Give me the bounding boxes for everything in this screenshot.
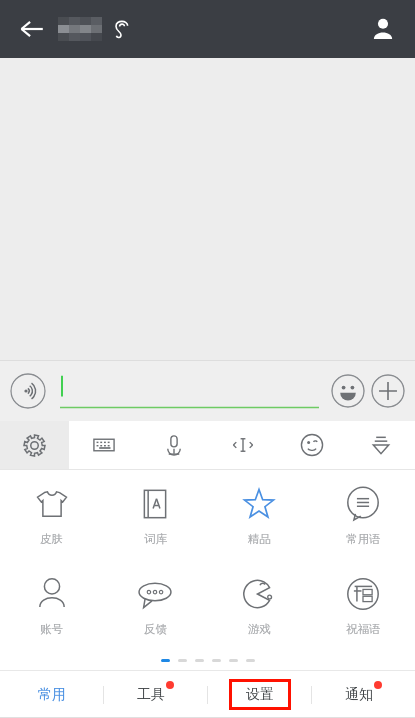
button[interactable]: Settings (0, 421, 69, 469)
button[interactable]: Emoji (331, 374, 365, 408)
button[interactable]: 词库 (103, 470, 207, 560)
button[interactable] (60, 360, 319, 421)
staticText: 祝福语 (346, 622, 381, 636)
staticText: 工具 (137, 686, 165, 704)
button[interactable]: 常用语 (311, 470, 415, 560)
button[interactable]: Cursor (208, 421, 277, 469)
staticText: 反馈 (144, 622, 167, 636)
staticText: 词库 (144, 532, 167, 546)
button[interactable]: 皮肤 (0, 470, 103, 560)
button[interactable]: 游戏 (207, 560, 311, 650)
staticText: 账号 (40, 622, 63, 636)
button[interactable]: 祝福语 (311, 560, 415, 650)
staticText: 设置 (246, 686, 274, 704)
button[interactable]: Profile (361, 7, 405, 51)
button[interactable]: 常用 (0, 671, 103, 718)
button[interactable]: 设置 (208, 671, 311, 718)
button[interactable]: Microphone (139, 421, 208, 469)
button[interactable]: 精品 (207, 470, 311, 560)
button[interactable]: 工具 (104, 671, 207, 718)
button[interactable]: Keyboard (69, 421, 139, 469)
button[interactable]: Emoticons (277, 421, 346, 469)
button[interactable]: Back (8, 5, 56, 53)
button[interactable]: 账号 (0, 560, 103, 650)
staticText: 游戏 (248, 622, 271, 636)
button[interactable]: Hide keyboard (346, 421, 415, 469)
staticText: 常用语 (346, 532, 381, 546)
button[interactable]: More (371, 374, 405, 408)
staticText: 皮肤 (40, 532, 63, 546)
staticText: 通知 (345, 686, 373, 704)
button[interactable]: Voice input (10, 373, 46, 409)
staticText: 精品 (248, 532, 271, 546)
button[interactable]: 反馈 (103, 560, 207, 650)
button[interactable]: 通知 (312, 671, 415, 718)
staticText: 常用 (38, 686, 66, 704)
